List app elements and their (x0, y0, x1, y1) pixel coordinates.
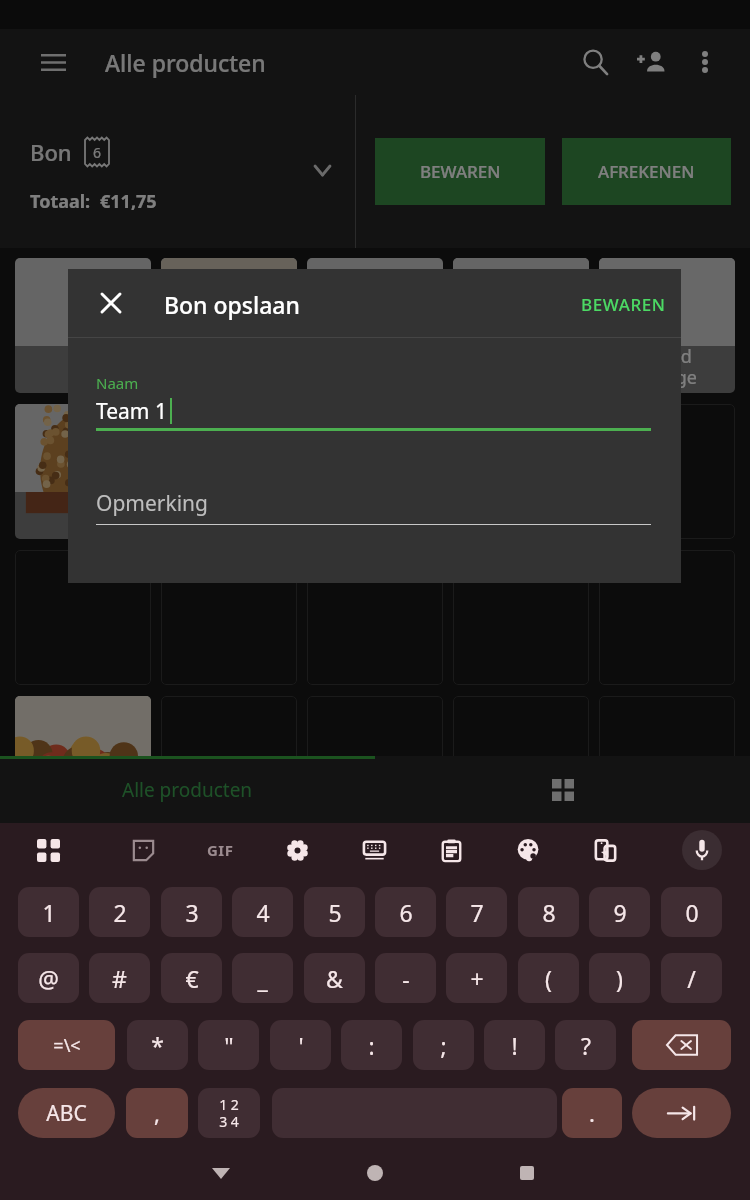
button[interactable]: ABC (18, 1088, 115, 1138)
staticText: AFREKENEN (598, 160, 695, 183)
button[interactable] (161, 258, 297, 393)
button[interactable]: ? (555, 1020, 616, 1070)
button[interactable]: Add person (623, 34, 679, 90)
button[interactable] (307, 550, 443, 685)
button[interactable]: ' (270, 1020, 331, 1070)
button[interactable] (15, 696, 151, 831)
button[interactable]: 5 (304, 887, 365, 937)
button[interactable]: # (89, 953, 150, 1003)
button[interactable]: _ (232, 953, 293, 1003)
button[interactable]: Grid view (375, 756, 750, 823)
button[interactable]: 3 (161, 887, 222, 937)
staticText: : (368, 1030, 375, 1061)
button[interactable]: palette (504, 826, 552, 874)
button[interactable]: Bon (0, 95, 355, 248)
button[interactable] (453, 258, 589, 393)
button[interactable]: . (562, 1088, 622, 1138)
button[interactable]: - (375, 953, 436, 1003)
button[interactable]: gear (273, 826, 321, 874)
button[interactable]: Menu (29, 38, 77, 86)
button[interactable]: Recents (503, 1149, 551, 1197)
button[interactable]: AFREKENEN (562, 138, 731, 205)
staticText: GIF (207, 840, 234, 860)
button[interactable]: BEWAREN (375, 138, 545, 205)
button[interactable]: ; (413, 1020, 474, 1070)
button[interactable]: gif (196, 826, 244, 874)
staticText: / (687, 963, 696, 994)
button[interactable]: 8 (518, 887, 579, 937)
button[interactable]: Bal (15, 404, 151, 539)
button[interactable] (307, 696, 443, 831)
button[interactable]: doc (581, 826, 629, 874)
button[interactable] (15, 258, 151, 393)
button[interactable] (599, 696, 735, 831)
button[interactable]: clip (427, 826, 475, 874)
button[interactable]: & (304, 953, 365, 1003)
staticText: ' (298, 1030, 304, 1061)
button[interactable]: + (446, 953, 507, 1003)
button[interactable]: 6 (375, 887, 436, 937)
button[interactable]: sticker (119, 826, 167, 874)
button[interactable]: 0 (661, 887, 722, 937)
button[interactable] (161, 696, 297, 831)
staticText: ! (511, 1030, 518, 1061)
button[interactable]: Backspace (632, 1020, 731, 1070)
button[interactable]: Alle producten (0, 756, 375, 823)
staticText: * (151, 1030, 164, 1061)
button[interactable]: 9 (589, 887, 650, 937)
staticText: Team 1 (96, 397, 167, 426)
button[interactable] (599, 404, 735, 539)
button[interactable]: 4 (232, 887, 293, 937)
button[interactable]: BEWAREN (565, 279, 682, 330)
button[interactable] (161, 404, 297, 539)
button[interactable]: 7 (446, 887, 507, 937)
staticText: 2 (113, 897, 127, 928)
staticText: Alle producten (105, 47, 266, 78)
button[interactable]: : (341, 1020, 402, 1070)
button[interactable]: Enter (632, 1088, 731, 1138)
button[interactable]: @ (18, 953, 79, 1003)
button[interactable] (453, 696, 589, 831)
button[interactable]: Search (567, 34, 623, 90)
button[interactable]: More options (679, 36, 731, 88)
button[interactable] (307, 258, 443, 393)
staticText: 7 (470, 897, 484, 928)
staticText: . (589, 1098, 595, 1128)
button[interactable]: ( (518, 953, 579, 1003)
button[interactable]: 1 (18, 887, 79, 937)
button[interactable]: * (127, 1020, 188, 1070)
button[interactable]: Close (84, 276, 137, 329)
staticText: 6 (399, 897, 413, 928)
button[interactable]: kb (350, 826, 398, 874)
staticText: ) (616, 963, 623, 994)
button[interactable] (453, 404, 589, 539)
button[interactable]: Naam (96, 373, 651, 431)
button[interactable]: grid (24, 826, 72, 874)
button[interactable] (307, 404, 443, 539)
button[interactable]: ...d ...ge (599, 258, 735, 393)
button[interactable]: ) (589, 953, 650, 1003)
button[interactable] (15, 550, 151, 685)
button[interactable]: Back (197, 1149, 245, 1197)
button[interactable] (453, 550, 589, 685)
button[interactable]: Expand receipt (300, 148, 344, 192)
button[interactable]: 1 2 3 4 (198, 1088, 260, 1138)
button[interactable]: € (161, 953, 222, 1003)
staticText: ( (545, 963, 552, 994)
button[interactable]: ! (484, 1020, 545, 1070)
staticText: Alle producten (122, 777, 253, 803)
button[interactable]: 2 (89, 887, 150, 937)
button[interactable] (599, 550, 735, 685)
staticText: €11,75 (100, 189, 157, 214)
staticText: & (326, 963, 343, 994)
button[interactable]: Home (351, 1149, 399, 1197)
button[interactable]: =\< (18, 1020, 115, 1070)
staticText: 6 (93, 143, 102, 162)
button[interactable]: Voice input (682, 830, 722, 870)
button[interactable]: / (661, 953, 722, 1003)
button[interactable]: " (198, 1020, 259, 1070)
button[interactable]: , (126, 1088, 188, 1138)
button[interactable]: Opmerking (96, 485, 651, 525)
button[interactable] (161, 550, 297, 685)
